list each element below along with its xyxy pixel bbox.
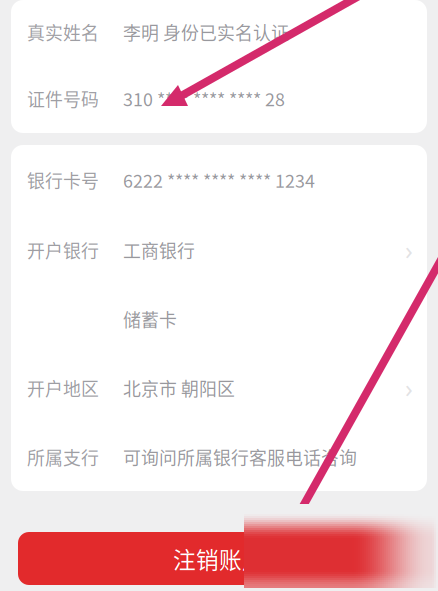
staticText: › [405, 233, 413, 267]
staticText: 开户地区 [27, 375, 99, 401]
staticText: 北京市 朝阳区 [123, 375, 235, 401]
staticText: 银行卡号 [27, 167, 99, 193]
staticText: 证件号码 [27, 86, 99, 111]
staticText: 可询问所属银行客服电话咨询 [123, 444, 357, 470]
staticText: 工商银行 [123, 237, 195, 263]
staticText: › [405, 371, 413, 405]
staticText: 开户银行 [27, 237, 99, 263]
button[interactable]: 注销账户 [18, 532, 420, 585]
staticText: 李明 身份已实名认证 [123, 19, 289, 45]
staticText: 6222 **** **** **** 1234 [123, 167, 315, 193]
staticText: 所属支行 [27, 444, 99, 470]
staticText: 真实姓名 [27, 19, 99, 45]
staticText: 储蓄卡 [123, 306, 177, 332]
staticText: 310 **** **** **** 28 [123, 86, 285, 111]
staticText: 注销账户 [173, 542, 265, 575]
